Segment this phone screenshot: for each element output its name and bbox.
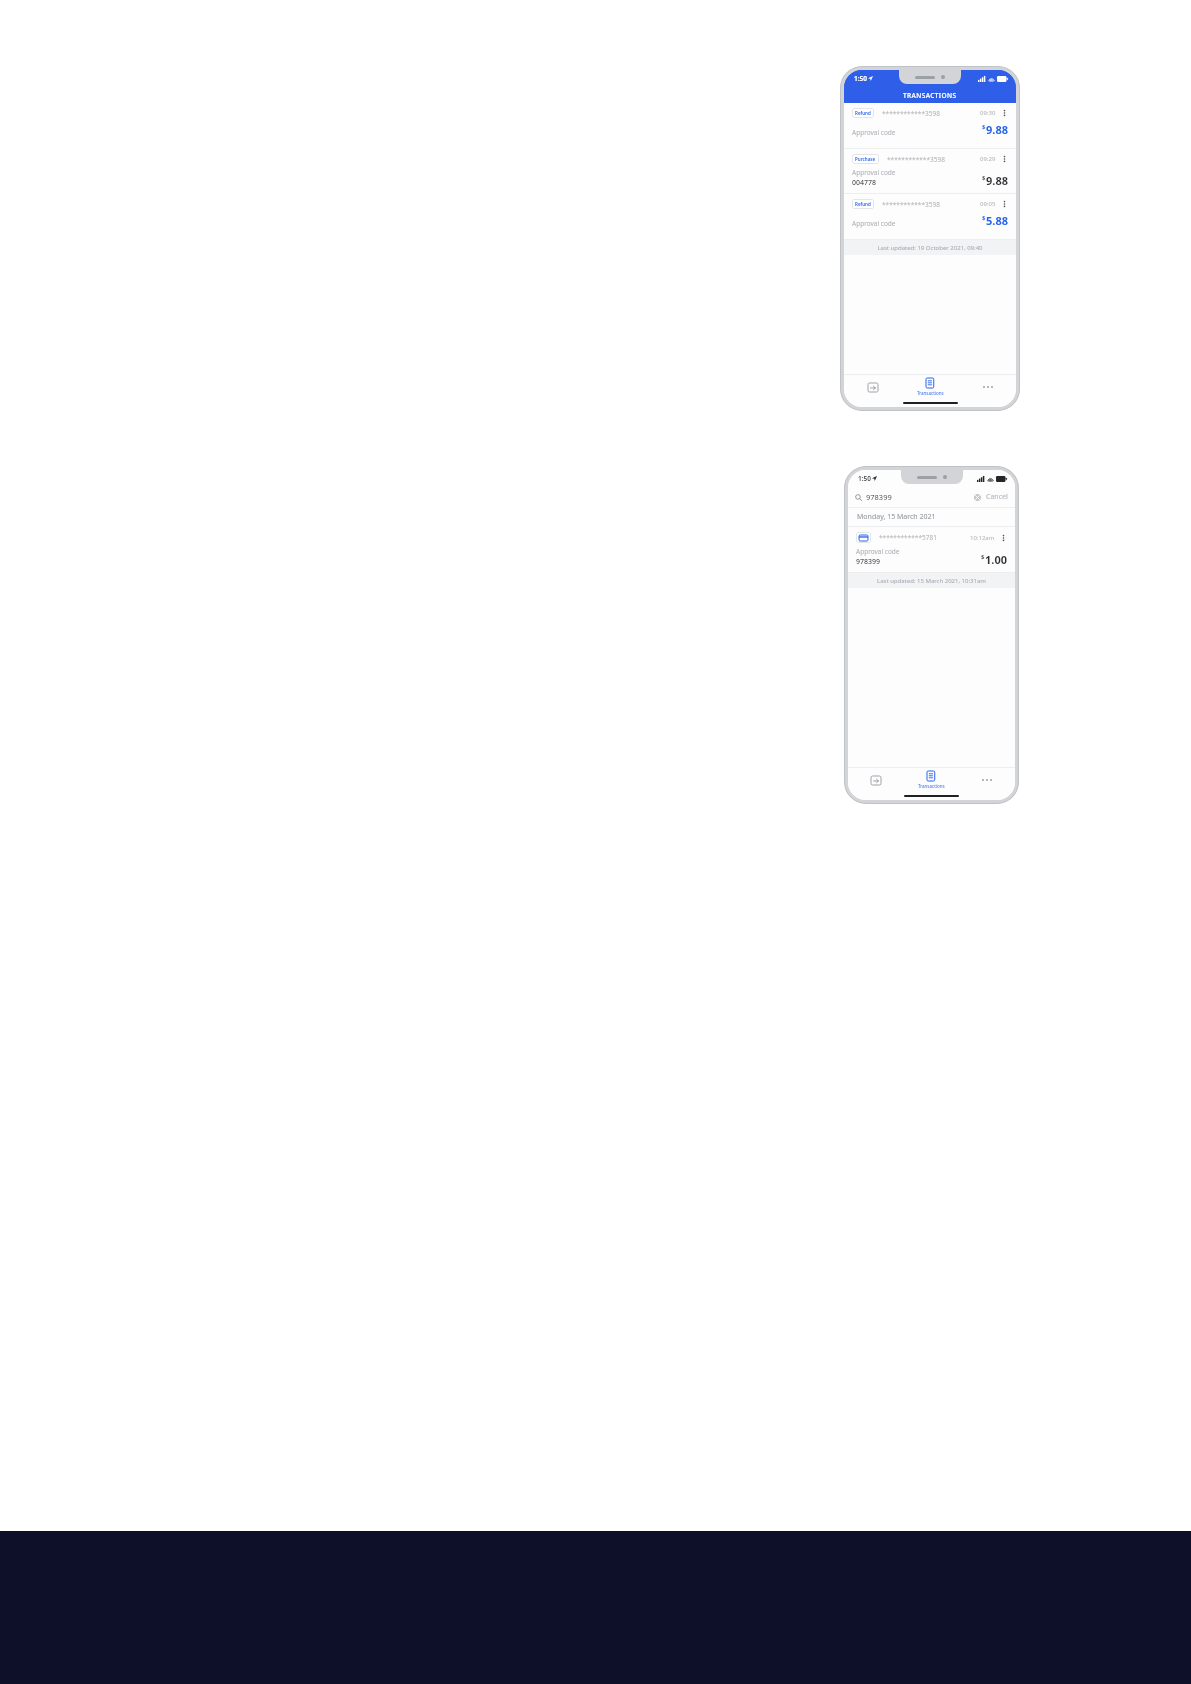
staticText: Approval code: [856, 547, 900, 556]
staticText: 09:05: [980, 200, 996, 208]
button[interactable]: More: [959, 768, 1015, 792]
staticText: 1:50: [858, 474, 871, 483]
staticText: Monday, 15 March 2021: [857, 512, 936, 522]
staticText: Cancel: [986, 492, 1008, 502]
button[interactable]: More options: [1000, 533, 1007, 543]
staticText: 1:50: [854, 74, 867, 83]
button[interactable]: Pay: [848, 768, 903, 792]
button[interactable]: More options: [1001, 108, 1008, 118]
staticText: Transactions: [917, 390, 944, 396]
staticText: 004778: [852, 178, 877, 188]
button[interactable]: More options: [1001, 154, 1008, 164]
staticText: 9.88: [986, 173, 1008, 188]
staticText: 9.88: [986, 122, 1008, 137]
button[interactable]: 978399: [855, 492, 974, 502]
staticText: $: [982, 123, 986, 131]
staticText: Refund: [855, 201, 871, 207]
staticText: Refund: [855, 110, 871, 116]
button[interactable]: Clear search: [974, 494, 981, 501]
staticText: ************3598: [887, 155, 945, 164]
staticText: Transactions: [918, 783, 945, 789]
button[interactable]: Cancel: [986, 492, 1008, 502]
staticText: 1.00: [985, 552, 1007, 567]
button[interactable]: Refund: [844, 103, 1016, 148]
button[interactable]: ************5781: [848, 527, 1015, 572]
button[interactable]: More: [959, 375, 1016, 399]
staticText: 978399: [856, 557, 881, 567]
staticText: 5.88: [986, 213, 1008, 228]
staticText: $: [981, 553, 985, 561]
staticText: ************3598: [882, 109, 940, 118]
staticText: Approval code: [852, 168, 896, 177]
staticText: 09:29: [980, 155, 996, 163]
staticText: Approval code: [852, 219, 896, 228]
staticText: ************5781: [879, 533, 937, 542]
staticText: Purchase: [855, 156, 876, 162]
button[interactable]: Pay: [844, 375, 902, 399]
staticText: Last updated: 19 October 2021, 09:40: [877, 244, 983, 252]
staticText: Last updated: 15 March 2021, 10:31am: [877, 577, 986, 585]
button[interactable]: More options: [1001, 199, 1008, 209]
staticText: $: [982, 214, 986, 222]
staticText: 09:30: [980, 109, 996, 117]
staticText: $: [982, 174, 986, 182]
staticText: TRANSACTIONS: [903, 91, 957, 100]
button[interactable]: Refund: [844, 194, 1016, 239]
staticText: 978399: [866, 492, 892, 502]
staticText: ************3598: [882, 200, 940, 209]
button[interactable]: Transactions: [902, 375, 959, 399]
button[interactable]: Purchase: [844, 149, 1016, 193]
button[interactable]: Transactions: [903, 768, 959, 792]
staticText: Approval code: [852, 128, 896, 137]
staticText: 10:12am: [970, 534, 995, 542]
